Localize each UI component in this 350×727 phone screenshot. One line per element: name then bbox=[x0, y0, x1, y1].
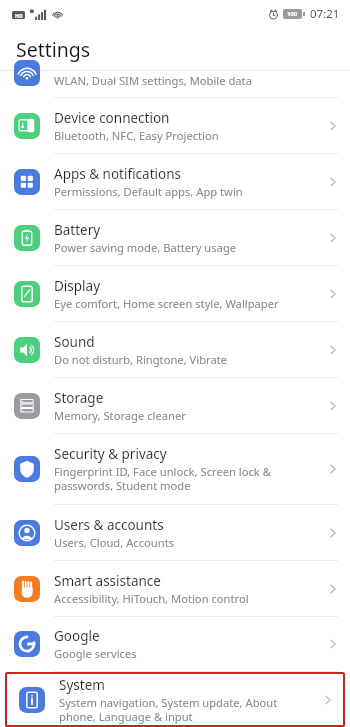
staticText: Power saving mode, Battery usage bbox=[54, 240, 237, 255]
staticText: Storage bbox=[54, 389, 104, 407]
staticText: Accessibility, HiTouch, Motion control bbox=[54, 591, 249, 606]
button[interactable]: Security & privacy bbox=[0, 434, 350, 504]
staticText: 07:21 bbox=[310, 6, 340, 22]
staticText: Users & accounts bbox=[54, 516, 164, 534]
button[interactable]: Smart assistance bbox=[0, 561, 350, 616]
staticText: Fingerprint ID, Face unlock, Screen lock… bbox=[54, 464, 271, 493]
staticText: Apps & notifications bbox=[54, 165, 181, 183]
staticText: Permissions, Default apps, App twin bbox=[54, 184, 243, 199]
staticText: 100 bbox=[287, 10, 298, 18]
staticText: Bluetooth, NFC, Easy Projection bbox=[54, 128, 219, 143]
staticText: Security & privacy bbox=[54, 445, 167, 463]
button[interactable]: Storage bbox=[0, 378, 350, 433]
staticText: Device connection bbox=[54, 109, 170, 127]
staticText: Battery bbox=[54, 221, 101, 239]
staticText: Google services bbox=[54, 646, 137, 661]
button[interactable]: Battery bbox=[0, 210, 350, 265]
staticText: Memory, Storage cleaner bbox=[54, 408, 186, 423]
staticText: Eye comfort, Home screen style, Wallpape… bbox=[54, 296, 279, 311]
staticText: WLAN, Dual SIM settings, Mobile data bbox=[54, 73, 252, 88]
staticText: Google bbox=[54, 627, 100, 645]
button[interactable]: Apps & notifications bbox=[0, 154, 350, 209]
staticText: System bbox=[59, 676, 105, 694]
button[interactable]: Display bbox=[0, 266, 350, 321]
button[interactable]: Device connection bbox=[0, 98, 350, 153]
button[interactable]: Google bbox=[0, 617, 350, 671]
button[interactable]: WLAN, Dual SIM settings, Mobile data bbox=[0, 71, 350, 97]
button[interactable]: Sound bbox=[0, 322, 350, 377]
staticText: Sound bbox=[54, 333, 95, 351]
staticText: System navigation, System update, About … bbox=[59, 695, 278, 724]
staticText: Settings bbox=[16, 36, 91, 63]
staticText: Smart assistance bbox=[54, 572, 161, 590]
staticText: Display bbox=[54, 277, 101, 295]
staticText: Users, Cloud, Accounts bbox=[54, 535, 175, 550]
button[interactable]: Users & accounts bbox=[0, 505, 350, 560]
staticText: HD bbox=[15, 12, 23, 19]
staticText: Do not disturb, Ringtone, Vibrate bbox=[54, 352, 228, 367]
button[interactable]: System bbox=[5, 672, 345, 727]
